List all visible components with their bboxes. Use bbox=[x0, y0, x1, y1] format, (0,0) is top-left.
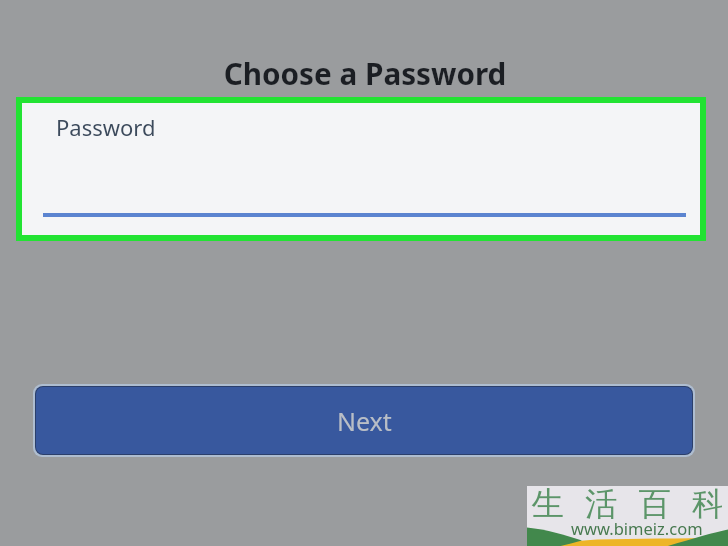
button[interactable]: Next bbox=[36, 387, 692, 454]
staticText: Choose a Password bbox=[1, 53, 728, 93]
staticText: Next bbox=[337, 404, 392, 438]
staticText: Password bbox=[56, 112, 156, 142]
staticText: www.bimeiz.com bbox=[571, 517, 703, 539]
staticText: 生活百科 bbox=[521, 484, 722, 525]
button[interactable]: Password field bbox=[22, 103, 700, 235]
